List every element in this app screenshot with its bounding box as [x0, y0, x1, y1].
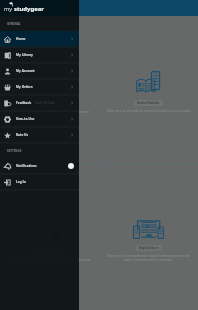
- staticText: Notifications: [16, 164, 37, 168]
- staticText: my: [4, 5, 13, 13]
- button[interactable]: Rate Us: [0, 127, 79, 143]
- staticText: My Account: [16, 69, 35, 73]
- staticText: My Orders: [16, 85, 33, 89]
- button[interactable]: Feedback: [0, 95, 79, 111]
- staticText: Scan the QR code in your book to unlock …: [11, 110, 89, 114]
- button[interactable]: Scan QR Code: [0, 16, 99, 164]
- staticText: My Library: [16, 53, 33, 57]
- button[interactable]: Digital Store: [99, 165, 198, 310]
- staticText: GENERAL: [7, 22, 21, 26]
- staticText: Log In: [16, 180, 26, 184]
- staticText: Books/Ebooks: [137, 101, 160, 105]
- button[interactable]: Log In: [0, 174, 79, 190]
- button[interactable]: Books/Ebooks: [99, 16, 198, 164]
- staticText: Rate Us: [16, 133, 29, 137]
- staticText: How-to-Use: [16, 117, 35, 121]
- button[interactable]: Home: [0, 31, 79, 47]
- button[interactable]: How-to-Use: [0, 111, 79, 127]
- staticText: Digital Store: [139, 246, 159, 250]
- staticText: Enter here for selected free contents to…: [107, 109, 191, 113]
- button[interactable]: Notifications: [0, 158, 79, 174]
- staticText: Scan QR Code: [35, 101, 55, 105]
- button[interactable]: My Account: [0, 63, 79, 79]
- staticText: Test your knowledge with interactive ass…: [9, 258, 91, 262]
- staticText: Enter here for a comprehensive digital l…: [103, 254, 194, 262]
- staticText: SETTINGS: [7, 149, 22, 153]
- staticText: Scan QR Code: [39, 102, 61, 106]
- button[interactable]: My Orders: [0, 79, 79, 95]
- staticText: Feedback: [16, 101, 32, 105]
- button[interactable]: My Library: [0, 47, 79, 63]
- button[interactable]: Assessments: [0, 165, 99, 310]
- staticText: Home: [16, 37, 26, 41]
- staticText: studygear: [14, 5, 44, 13]
